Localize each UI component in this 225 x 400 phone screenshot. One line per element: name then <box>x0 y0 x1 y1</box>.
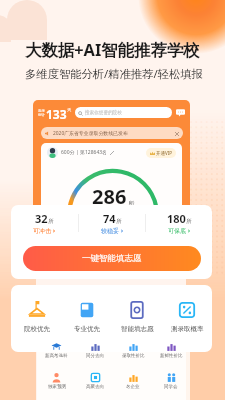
button[interactable]: 搜索你想要的院校 <box>75 107 172 118</box>
staticText: 高考 <box>38 109 45 113</box>
button[interactable]: 院校优先 <box>11 298 62 333</box>
button[interactable]: 高聚去向 <box>76 372 114 390</box>
staticText: 测录取概率 <box>171 325 204 333</box>
staticText: 600分 | 第128643名 <box>61 149 108 156</box>
staticText: 可冲击 <box>33 227 51 235</box>
staticText: 所 <box>116 218 122 225</box>
button[interactable]: 测录取概率 <box>162 298 212 333</box>
staticText: 专业优先 <box>74 325 100 333</box>
staticText: 多维度智能分析/精准推荐/轻松填报 <box>25 66 203 81</box>
staticText: 新鲜性价比 <box>160 353 183 359</box>
button[interactable]: 开通VIP <box>150 150 172 156</box>
button[interactable]: 一键智能填志愿 <box>23 246 201 271</box>
button[interactable]: 同分去向 <box>76 341 114 359</box>
staticText: 286 <box>92 183 127 210</box>
staticText: 院校优先 <box>24 325 50 333</box>
button[interactable]: 2020广东省专业录取分数线已发布 <box>41 127 183 139</box>
staticText: 高聚去向 <box>86 384 104 390</box>
button[interactable]: 智能填志愿 <box>112 298 162 333</box>
button[interactable]: 录取性价比 <box>114 341 152 359</box>
button[interactable]: 180 <box>146 211 212 235</box>
button[interactable]: 32 <box>11 211 78 235</box>
staticText: 2020广东省专业录取分数线已发布 <box>53 130 128 137</box>
staticText: 较稳妥 <box>101 227 119 235</box>
staticText: 可保底 <box>168 227 186 235</box>
button[interactable]: 74 <box>79 211 145 235</box>
button[interactable]: 独家预测 <box>37 372 76 390</box>
staticText: 智能填志愿 <box>121 325 154 333</box>
button[interactable]: 消息 <box>176 108 185 117</box>
staticText: 所 <box>186 218 192 225</box>
staticText: 32 <box>35 211 48 226</box>
staticText: 大数据+AI智能推荐学校 <box>25 38 200 60</box>
staticText: 开通VIP <box>156 150 172 156</box>
button[interactable]: 同学会 <box>152 372 190 390</box>
button[interactable]: 新高考选科 <box>37 341 76 359</box>
staticText: 搜索你想要的院校 <box>85 110 122 116</box>
staticText: 新高考选科 <box>45 353 68 359</box>
button[interactable]: 新鲜性价比 <box>152 341 190 359</box>
button[interactable]: 名企业 <box>114 372 152 390</box>
staticText: 独家预测 <box>48 384 66 390</box>
staticText: 180 <box>167 211 186 226</box>
staticText: 所 <box>48 218 54 225</box>
staticText: 一键智能填志愿 <box>82 253 142 264</box>
staticText: 录取性价比 <box>122 353 145 359</box>
staticText: 同分去向 <box>86 353 104 359</box>
staticText: 所 <box>128 200 135 208</box>
staticText: 同学会 <box>164 384 178 390</box>
staticText: 倒计 <box>38 113 45 117</box>
staticText: 名企业 <box>126 384 140 390</box>
staticText: 133 <box>46 106 67 119</box>
button[interactable]: 专业优先 <box>62 298 112 333</box>
staticText: 74 <box>103 211 116 226</box>
staticText: 天 <box>67 107 72 112</box>
